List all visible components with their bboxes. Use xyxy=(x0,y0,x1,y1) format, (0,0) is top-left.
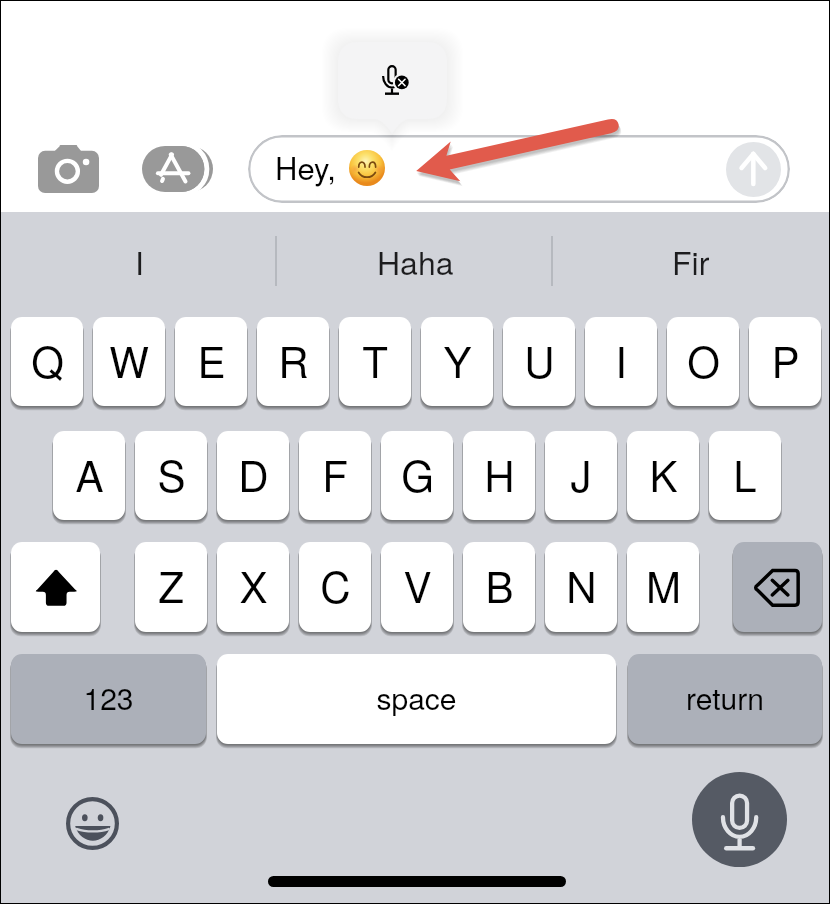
staticText: N xyxy=(566,555,597,615)
button[interactable]: D xyxy=(217,431,289,520)
button[interactable]: Apps xyxy=(142,146,213,192)
button[interactable]: Send xyxy=(726,142,781,197)
staticText: Z xyxy=(158,555,184,615)
button[interactable]: W xyxy=(93,317,165,406)
button[interactable]: H xyxy=(463,431,535,520)
button[interactable]: P xyxy=(749,317,821,406)
staticText: Haha xyxy=(377,238,454,284)
button[interactable]: T xyxy=(339,317,411,406)
staticText: Hey, xyxy=(275,144,336,188)
staticText: U xyxy=(524,330,555,390)
button[interactable]: Q xyxy=(11,317,83,406)
button[interactable]: K xyxy=(627,431,699,520)
staticText: return xyxy=(686,676,764,719)
button[interactable]: E xyxy=(175,317,247,406)
staticText: V xyxy=(403,555,432,615)
button[interactable]: J xyxy=(545,431,617,520)
staticText: B xyxy=(485,555,514,615)
staticText: R xyxy=(278,330,309,390)
button[interactable]: M xyxy=(627,542,699,632)
staticText: I xyxy=(615,330,627,390)
staticText: J xyxy=(570,444,592,504)
button[interactable]: X xyxy=(217,542,289,632)
button[interactable]: 123 xyxy=(11,654,206,744)
staticText: F xyxy=(322,444,348,504)
button[interactable]: Haha xyxy=(277,213,553,309)
button[interactable]: I xyxy=(585,317,657,406)
staticText: H xyxy=(484,444,515,504)
staticText: C xyxy=(320,555,351,615)
staticText: M xyxy=(646,555,681,615)
button[interactable]: return xyxy=(628,654,822,744)
button[interactable]: U xyxy=(503,317,575,406)
staticText: space xyxy=(376,676,457,719)
button[interactable]: R xyxy=(257,317,329,406)
staticText: W xyxy=(109,330,149,390)
button[interactable]: Fir xyxy=(553,213,829,309)
button[interactable]: I xyxy=(1,213,277,309)
button[interactable]: N xyxy=(545,542,617,632)
staticText: 123 xyxy=(83,676,134,719)
staticText: Fir xyxy=(672,238,710,284)
button[interactable]: Backspace xyxy=(733,542,822,632)
button[interactable]: Hey, xyxy=(248,135,790,203)
staticText: S xyxy=(157,444,186,504)
button[interactable]: Emoji xyxy=(66,797,119,850)
staticText: E xyxy=(197,330,226,390)
staticText: Q xyxy=(31,330,64,390)
staticText: G xyxy=(401,444,434,504)
button[interactable]: Camera xyxy=(38,145,99,193)
button[interactable]: Dictation xyxy=(692,772,787,867)
button[interactable]: F xyxy=(299,431,371,520)
staticText: K xyxy=(649,444,678,504)
staticText: D xyxy=(238,444,269,504)
staticText: L xyxy=(733,444,757,504)
button[interactable]: V xyxy=(381,542,453,632)
button[interactable]: O xyxy=(667,317,739,406)
button[interactable]: Shift xyxy=(11,542,100,632)
button[interactable]: B xyxy=(463,542,535,632)
button[interactable]: space xyxy=(217,654,616,744)
button[interactable]: A xyxy=(53,431,125,520)
button[interactable]: G xyxy=(381,431,453,520)
staticText: A xyxy=(75,444,104,504)
button[interactable]: L xyxy=(709,431,781,520)
staticText: Y xyxy=(443,330,472,390)
staticText: P xyxy=(771,330,800,390)
staticText: T xyxy=(362,330,388,390)
staticText: X xyxy=(239,555,268,615)
staticText: O xyxy=(687,330,720,390)
button[interactable]: Z xyxy=(135,542,207,632)
button[interactable]: S xyxy=(135,431,207,520)
button[interactable]: Y xyxy=(421,317,493,406)
button[interactable]: C xyxy=(299,542,371,632)
staticText: I xyxy=(135,238,144,284)
